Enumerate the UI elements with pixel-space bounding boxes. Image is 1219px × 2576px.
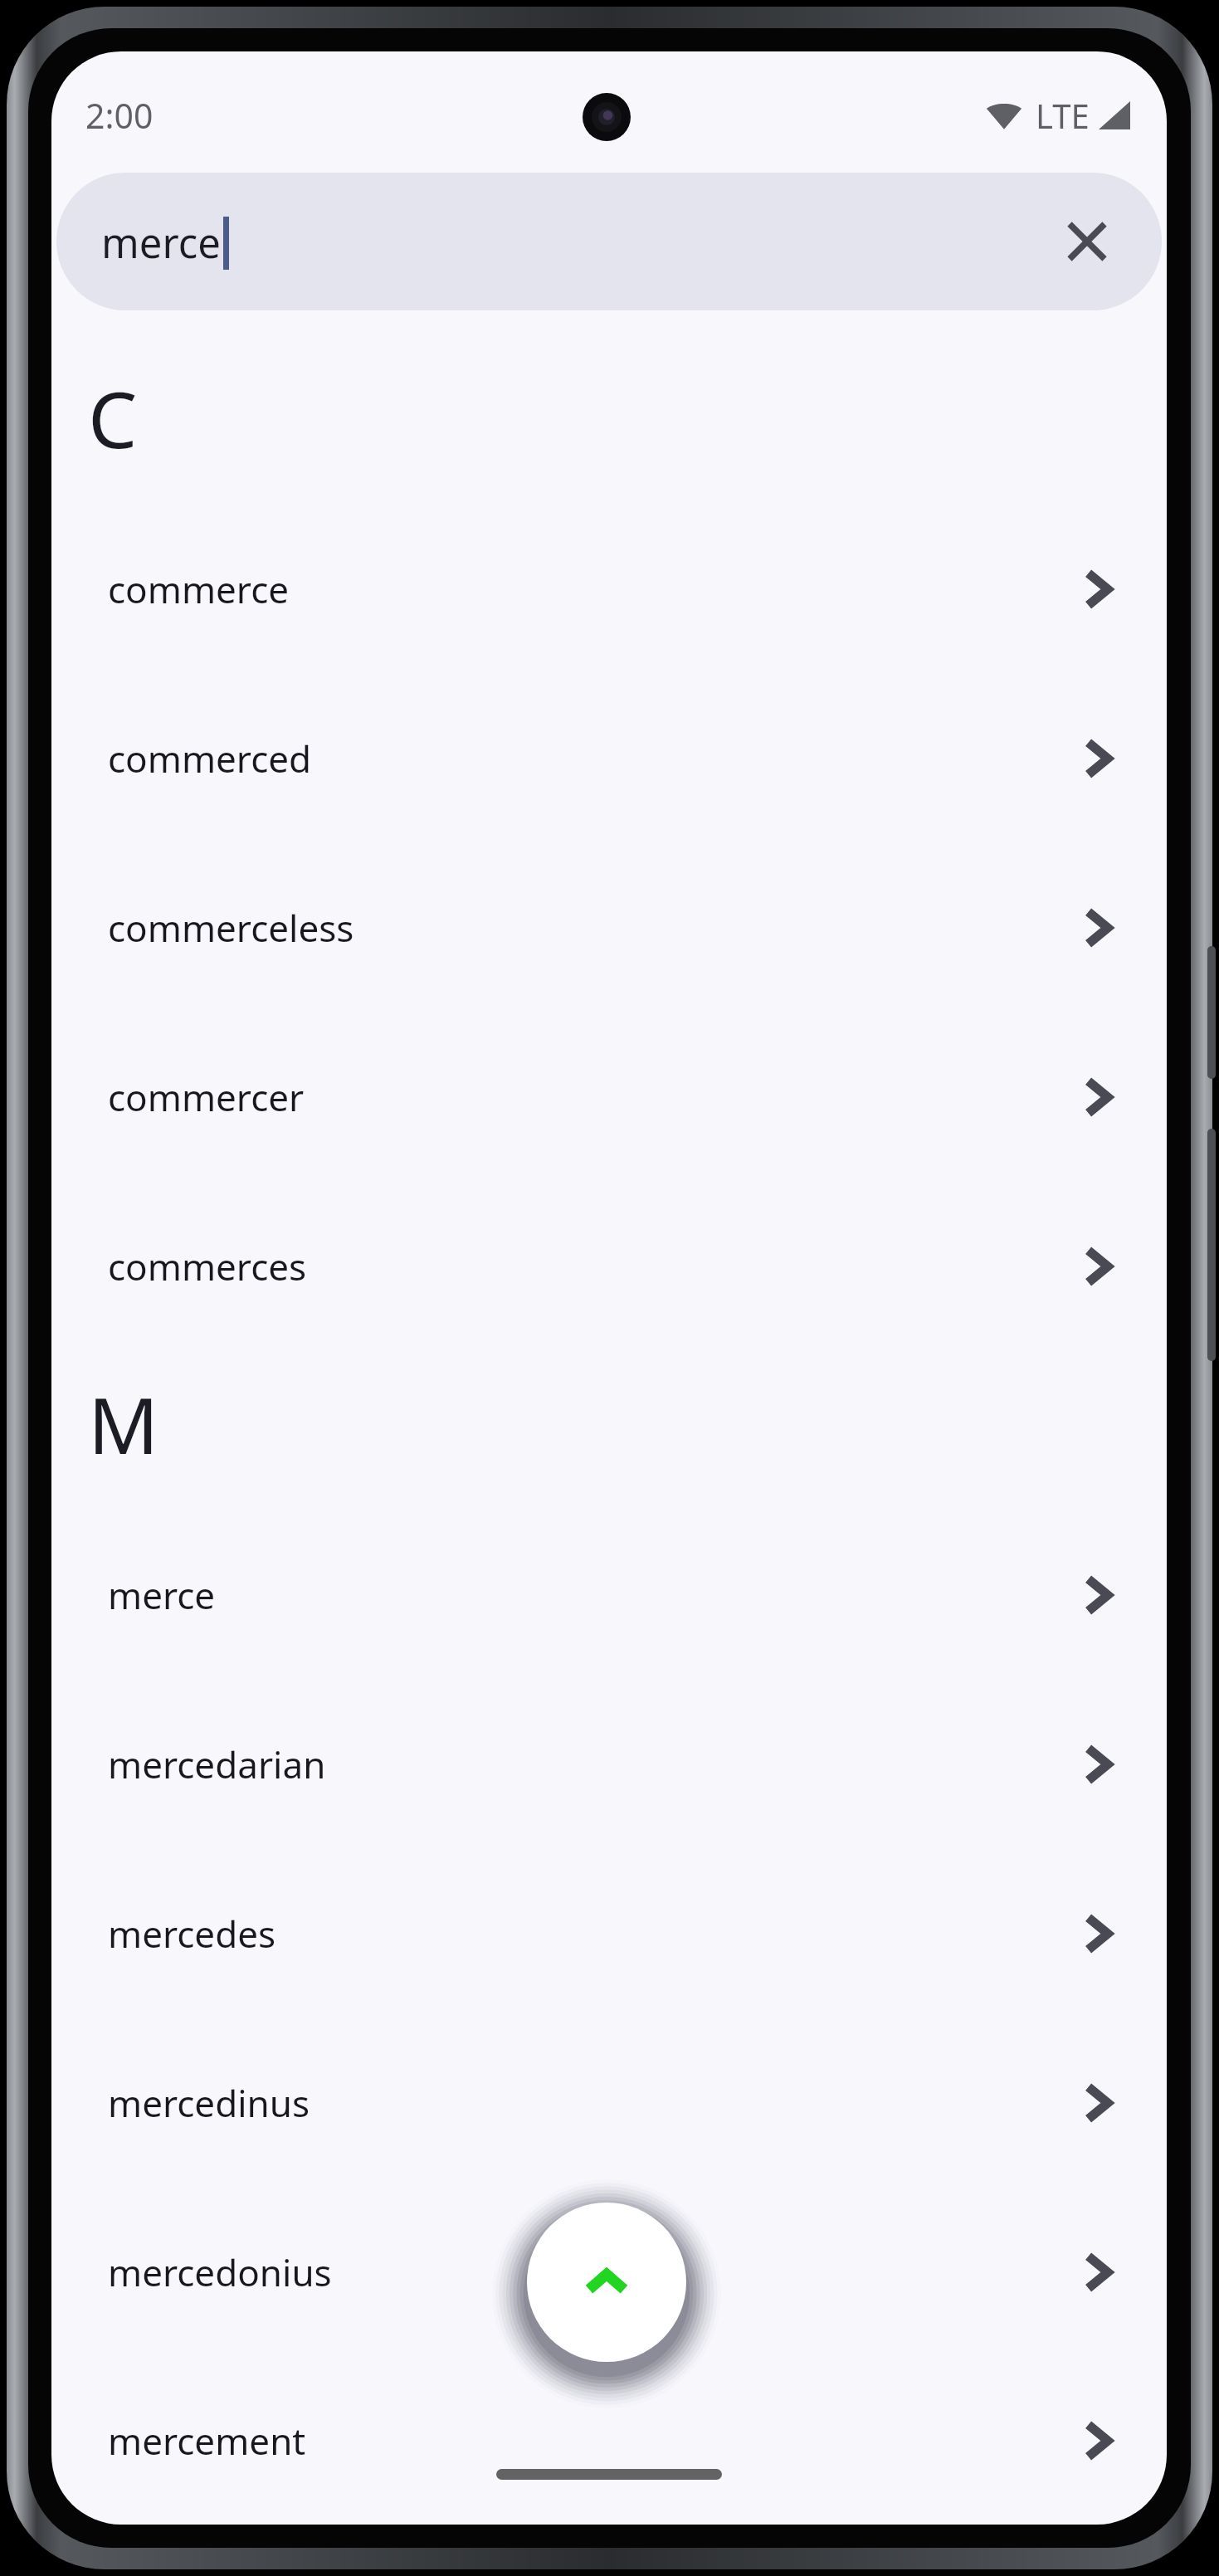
- staticText: commerceless: [108, 903, 1085, 953]
- button[interactable]: commerces: [51, 1182, 1167, 1351]
- button[interactable]: merce: [56, 173, 1162, 310]
- staticText: commerced: [108, 734, 1085, 783]
- staticText: mercedinus: [108, 2078, 1085, 2128]
- staticText: 2:00: [85, 92, 154, 139]
- button[interactable]: commerceless: [51, 843, 1167, 1012]
- button[interactable]: mercement: [51, 2357, 1167, 2525]
- button[interactable]: Clear search: [1049, 203, 1125, 280]
- button[interactable]: commercer: [51, 1012, 1167, 1182]
- staticText: commerce: [108, 564, 1085, 614]
- button[interactable]: mercedinus: [51, 2018, 1167, 2188]
- staticText: C: [88, 365, 138, 471]
- staticText: mercedarian: [108, 1739, 1085, 1789]
- button[interactable]: mercedarian: [51, 1680, 1167, 1849]
- button[interactable]: commerce: [51, 505, 1167, 674]
- staticText: merce: [101, 215, 221, 271]
- staticText: mercement: [108, 2416, 1085, 2466]
- staticText: commerces: [108, 1242, 1085, 1291]
- staticText: LTE: [1036, 93, 1090, 138]
- staticText: mercedes: [108, 1909, 1085, 1959]
- button[interactable]: Scroll to top: [527, 2203, 686, 2362]
- button[interactable]: mercedes: [51, 1849, 1167, 2018]
- button[interactable]: commerced: [51, 674, 1167, 843]
- button[interactable]: merce: [51, 1510, 1167, 1680]
- staticText: merce: [108, 1570, 1085, 1620]
- button[interactable]: mercedonius: [51, 2188, 1167, 2357]
- staticText: mercedonius: [108, 2247, 1085, 2297]
- staticText: M: [88, 1371, 159, 1477]
- staticText: commercer: [108, 1072, 1085, 1122]
